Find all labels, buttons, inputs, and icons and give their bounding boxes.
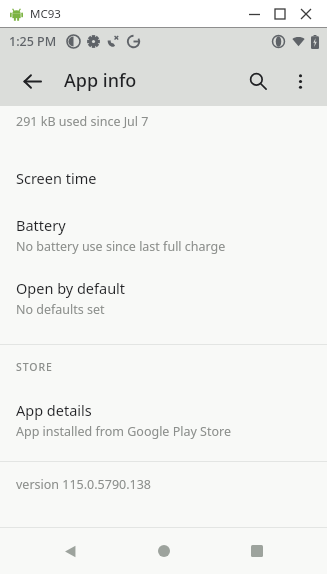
button[interactable]: Minimize (241, 1, 267, 27)
staticText: App installed from Google Play Store (16, 423, 231, 440)
staticText: Open by default (16, 278, 126, 298)
staticText: Battery (16, 215, 66, 235)
button[interactable]: Search (237, 60, 279, 102)
staticText: App details (16, 400, 92, 420)
staticText: Screen time (16, 168, 97, 188)
button[interactable]: Back (12, 61, 52, 101)
button[interactable]: Back (47, 528, 93, 574)
button[interactable]: 291 kB used since Jul 7 (0, 106, 327, 152)
staticText: version 115.0.5790.138 (16, 476, 152, 493)
staticText: STORE (16, 360, 53, 374)
staticText: App info (64, 68, 137, 93)
button[interactable]: Recents (234, 528, 280, 574)
button[interactable]: More options (279, 60, 321, 102)
staticText: MC93 (30, 6, 61, 22)
staticText: No battery use since last full charge (16, 238, 226, 255)
staticText: 291 kB used since Jul 7 (16, 113, 149, 130)
button[interactable]: Home (141, 528, 187, 574)
staticText: 1:25 PM (9, 33, 57, 50)
button[interactable]: Close (293, 1, 319, 27)
button[interactable]: Battery (0, 204, 327, 267)
staticText: No defaults set (16, 301, 105, 318)
button[interactable]: Screen time (0, 152, 327, 204)
button[interactable]: Open by default (0, 267, 327, 330)
button[interactable]: App details (0, 389, 327, 452)
button[interactable]: Maximize (267, 1, 293, 27)
